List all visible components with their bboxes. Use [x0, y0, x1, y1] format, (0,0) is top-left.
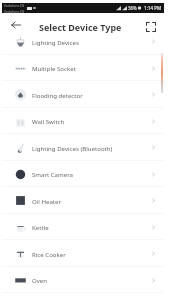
- staticText: Multiple Socket: [32, 64, 76, 72]
- staticText: Lighting Devices: [32, 38, 79, 46]
- button[interactable]: Flooding detector: [2, 81, 164, 108]
- button[interactable]: Wall Switch: [2, 108, 164, 134]
- button[interactable]: Lighting Devices (Bluetooth): [2, 134, 164, 161]
- button[interactable]: Lighting Devices: [2, 28, 164, 55]
- staticText: Vodafone-IN: [4, 9, 25, 13]
- staticText: Lighting Devices (Bluetooth): [32, 144, 113, 152]
- staticText: Select Device Type: [39, 21, 122, 33]
- staticText: 36%: [128, 5, 137, 11]
- staticText: Oven: [32, 276, 48, 284]
- button[interactable]: Oil Heater: [2, 187, 164, 214]
- button[interactable]: Multiple Socket: [2, 55, 164, 81]
- staticText: Rice Cooker: [32, 250, 66, 258]
- staticText: 1:14 PM: [144, 5, 162, 11]
- staticText: Oil Heater: [32, 197, 62, 205]
- staticText: Kettle: [32, 223, 49, 231]
- button[interactable]: Oven: [2, 267, 164, 293]
- staticText: Flooding detector: [32, 91, 83, 99]
- staticText: Vodafone-IN: [4, 3, 25, 8]
- button[interactable]: Kettle: [2, 214, 164, 240]
- button[interactable]: Back: [8, 17, 23, 32]
- button[interactable]: Scan QR code: [143, 19, 158, 34]
- button[interactable]: Rice Cooker: [2, 240, 164, 267]
- button[interactable]: Smart Camera: [2, 161, 164, 187]
- staticText: Smart Camera: [32, 170, 73, 178]
- staticText: Wall Switch: [32, 117, 65, 125]
